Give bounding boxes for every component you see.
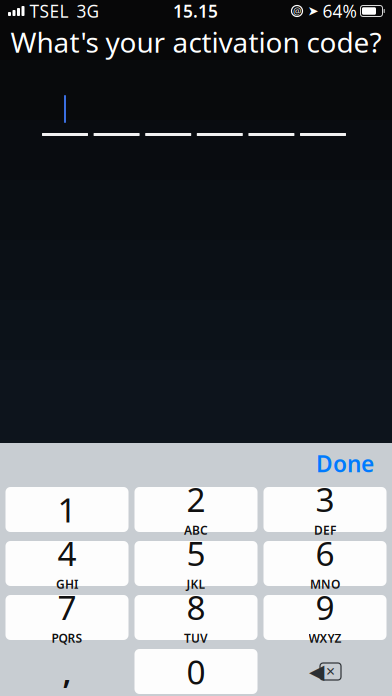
- staticText: ✕: [325, 665, 335, 678]
- staticText: 64%: [322, 0, 356, 22]
- staticText: WXYZ: [308, 630, 341, 646]
- staticText: PQRS: [51, 630, 82, 646]
- staticText: GHI: [56, 576, 78, 592]
- staticText: 0: [186, 649, 205, 694]
- staticText: What's your activation code?: [10, 23, 381, 61]
- staticText: TSEL: [29, 0, 68, 22]
- staticText: ABC: [184, 522, 208, 538]
- button[interactable]: 4: [5, 541, 128, 586]
- button[interactable]: 7: [5, 595, 128, 640]
- staticText: MNO: [310, 576, 340, 592]
- staticText: 5: [186, 531, 205, 575]
- staticText: 7: [57, 585, 76, 629]
- staticText: 4: [57, 531, 76, 575]
- button[interactable]: 9: [263, 595, 386, 640]
- staticText: ◀: [309, 660, 324, 683]
- button[interactable]: 1: [5, 487, 128, 532]
- staticText: ,: [62, 650, 71, 693]
- button[interactable]: 8: [134, 595, 257, 640]
- staticText: DEF: [314, 522, 336, 538]
- button[interactable]: 5: [134, 541, 257, 586]
- button[interactable]: 6: [263, 541, 386, 586]
- staticText: Done: [316, 448, 374, 478]
- button[interactable]: Done: [306, 442, 384, 484]
- staticText: 3: [315, 477, 334, 521]
- staticText: 1: [57, 487, 76, 532]
- staticText: 2: [186, 477, 205, 521]
- staticText: 3G: [76, 0, 99, 22]
- staticText: 15.15: [173, 0, 218, 22]
- staticText: 8: [186, 585, 205, 629]
- staticText: ➤: [307, 3, 318, 18]
- staticText: JKL: [186, 576, 205, 592]
- staticText: 9: [315, 585, 334, 629]
- staticText: TUV: [184, 630, 208, 646]
- button[interactable]: Delete: [263, 649, 386, 694]
- button[interactable]: 0: [134, 649, 257, 694]
- button[interactable]: Comma: [5, 649, 128, 694]
- staticText: @: [293, 5, 301, 17]
- button[interactable]: 3: [263, 487, 386, 532]
- button[interactable]: 2: [134, 487, 257, 532]
- staticText: 6: [315, 531, 334, 575]
